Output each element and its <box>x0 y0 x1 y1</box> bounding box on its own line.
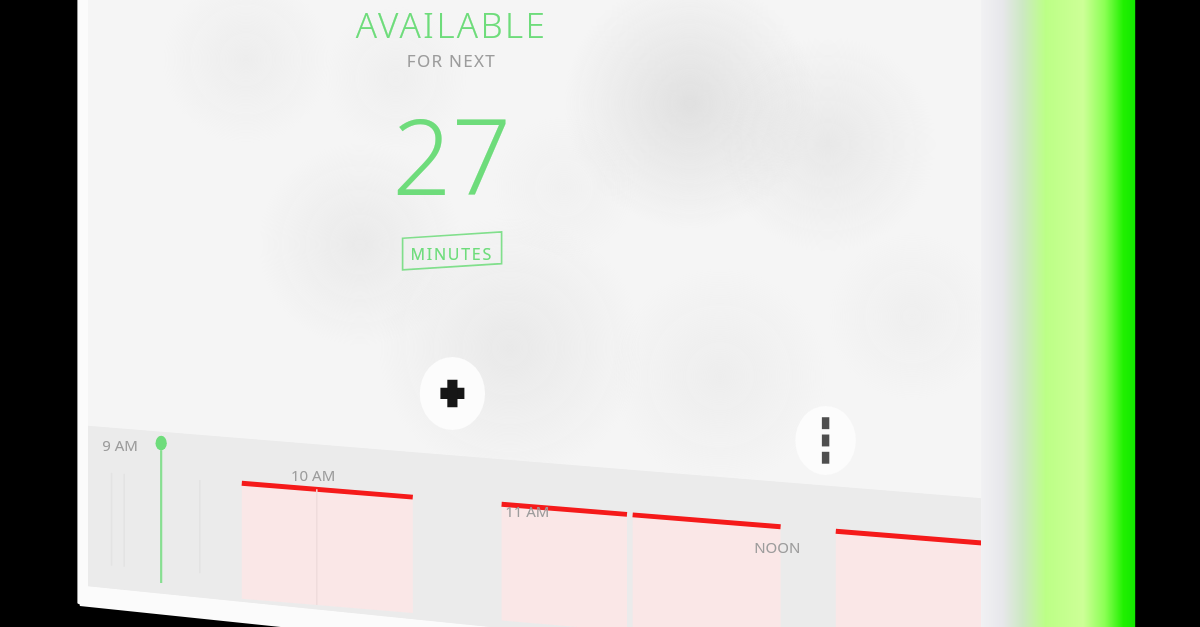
button[interactable]: More options <box>801 399 851 467</box>
button[interactable]: Add event <box>430 351 482 421</box>
